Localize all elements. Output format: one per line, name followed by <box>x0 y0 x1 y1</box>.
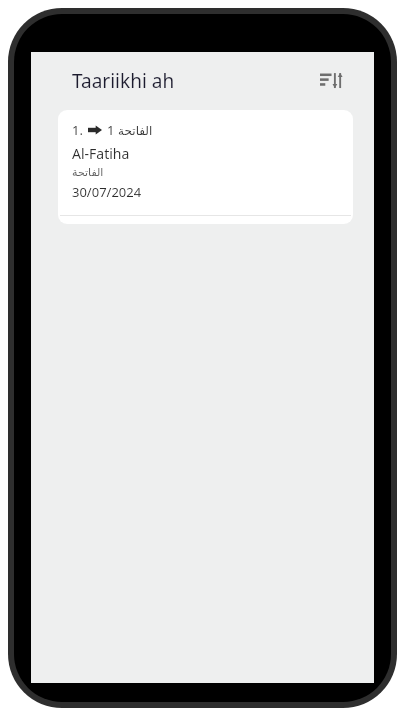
staticText: 1 <box>107 121 115 139</box>
staticText: 1. <box>72 121 83 139</box>
button[interactable]: 1. <box>58 110 353 224</box>
staticText: الفاتحة <box>115 122 153 138</box>
staticText: Al-Fatiha <box>72 144 130 163</box>
staticText: Taariikhi ah <box>72 68 175 94</box>
staticText: الفاتحة <box>72 166 104 179</box>
staticText: 30/07/2024 <box>72 183 142 201</box>
button[interactable]: Sort <box>314 63 350 99</box>
